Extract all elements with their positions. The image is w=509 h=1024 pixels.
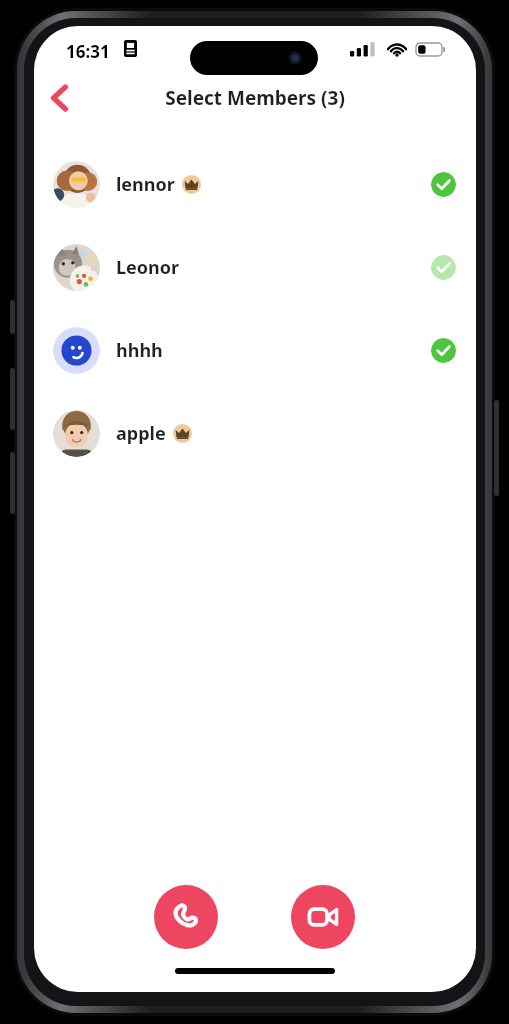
staticText: apple	[116, 421, 166, 446]
button[interactable]: Video call	[291, 885, 355, 949]
staticText: 16:31	[66, 40, 110, 63]
staticText: Leonor	[116, 255, 180, 280]
button[interactable]: apple	[34, 392, 476, 475]
staticText: hhhh	[116, 338, 163, 363]
button[interactable]: lennor	[34, 143, 476, 226]
staticText: Select Members (3)	[34, 85, 476, 111]
button[interactable]: hhhh	[34, 309, 476, 392]
button[interactable]: Voice call	[154, 885, 218, 949]
button[interactable]: Back	[36, 74, 82, 120]
button[interactable]: Leonor	[34, 226, 476, 309]
staticText: lennor	[116, 172, 175, 197]
